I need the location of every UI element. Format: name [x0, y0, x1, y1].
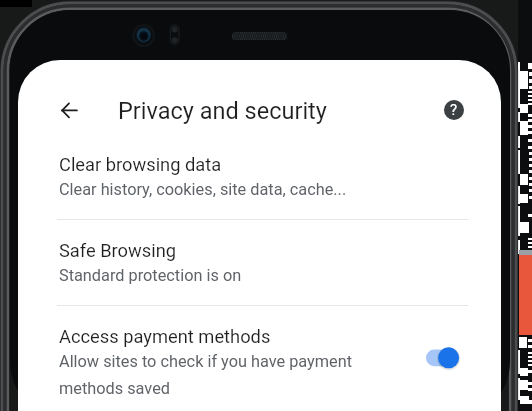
staticText: Privacy and security — [118, 97, 327, 125]
button[interactable]: Back — [50, 90, 90, 130]
staticText: Allow sites to check if you have payment… — [59, 352, 359, 398]
staticText: Access payment methods — [59, 326, 271, 347]
staticText: Clear browsing data — [59, 154, 222, 175]
staticText: Clear history, cookies, site data, cache… — [59, 180, 347, 199]
staticText: ? — [450, 101, 458, 119]
button[interactable]: Help — [444, 100, 464, 120]
staticText: Standard protection is on — [59, 266, 242, 285]
button[interactable]: Access payment methods toggle — [420, 342, 468, 374]
staticText: Safe Browsing — [59, 240, 177, 261]
